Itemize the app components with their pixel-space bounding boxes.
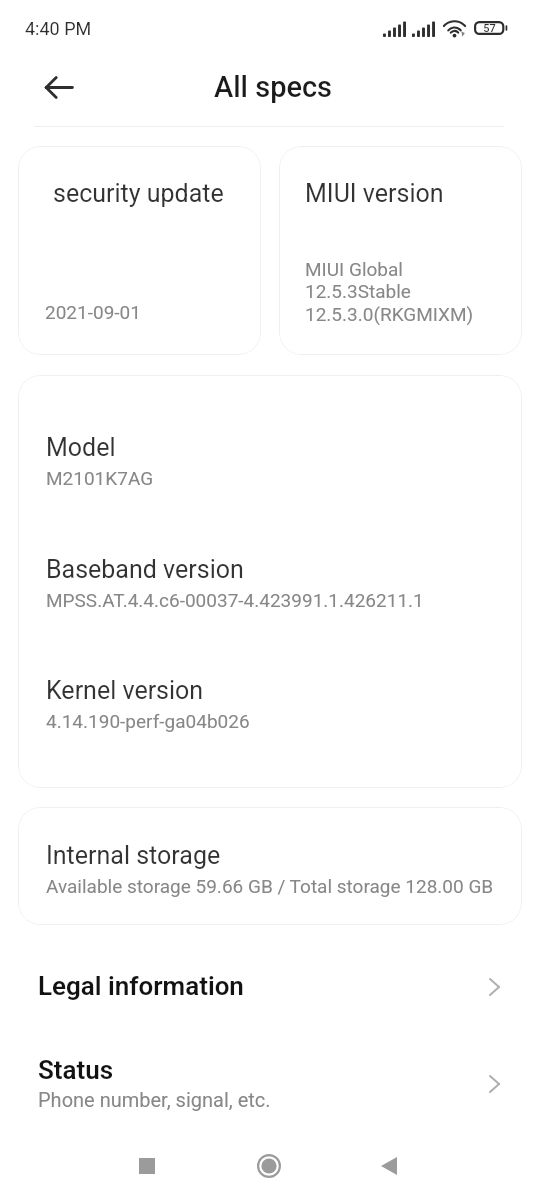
staticText: M2101K7AG [46, 467, 154, 489]
button[interactable]: Status [0, 1034, 540, 1132]
staticText: Baseband version [46, 555, 244, 584]
button[interactable]: Home [247, 1144, 291, 1188]
staticText: MIUI Global 12.5.3Stable 12.5.3.0(RKGMIX… [305, 258, 474, 326]
button[interactable]: Legal information [0, 947, 540, 1025]
staticText: 2021-09-01 [45, 301, 141, 323]
staticText: security update [53, 179, 224, 208]
button[interactable]: Back [37, 65, 81, 109]
button[interactable]: Recent apps [125, 1144, 169, 1188]
staticText: Phone number, signal, etc. [38, 1088, 271, 1111]
staticText: Status [38, 1055, 114, 1085]
staticText: 57 [475, 22, 504, 35]
staticText: MIUI version [305, 179, 444, 208]
staticText: Legal information [38, 971, 244, 1001]
button[interactable]: Back [367, 1144, 411, 1188]
staticText: 4:40 PM [25, 18, 92, 39]
staticText: Model [46, 433, 116, 462]
staticText: 4.14.190-perf-ga04b026 [46, 710, 250, 732]
staticText: Available storage 59.66 GB / Total stora… [46, 875, 494, 897]
staticText: Internal storage [46, 841, 221, 870]
staticText: All specs [214, 70, 333, 104]
staticText: Kernel version [46, 676, 204, 705]
staticText: MPSS.AT.4.4.c6-00037-4.423991.1.426211.1 [46, 589, 424, 611]
